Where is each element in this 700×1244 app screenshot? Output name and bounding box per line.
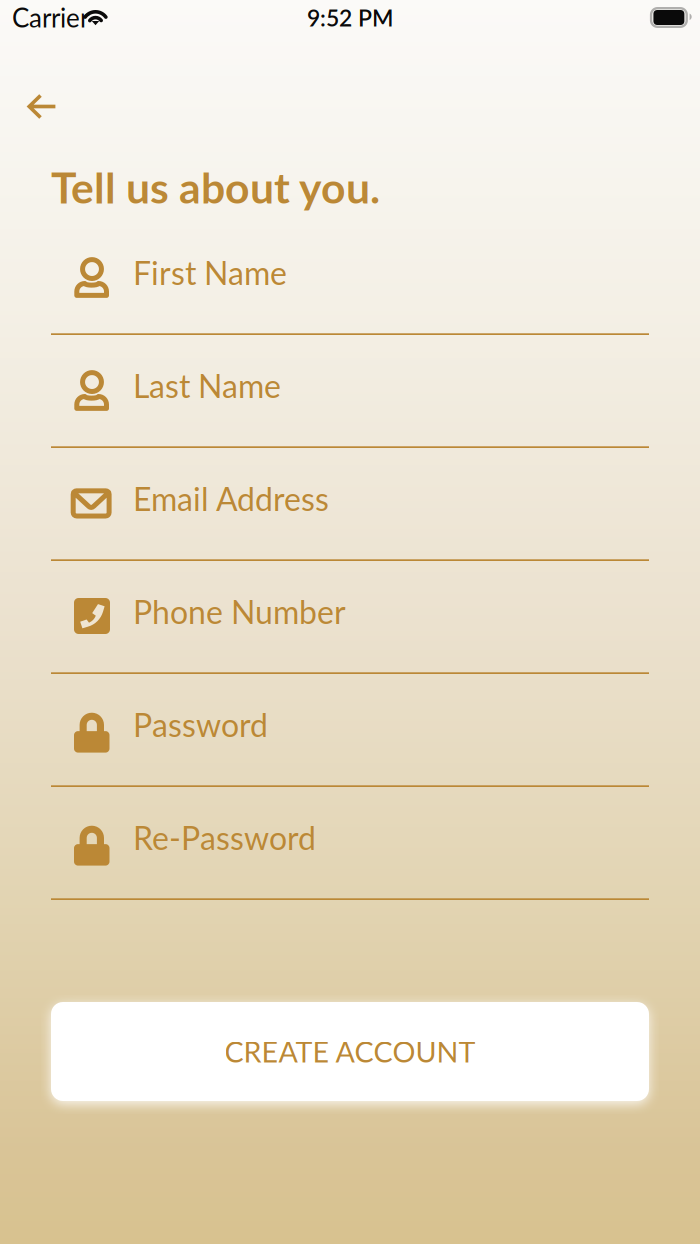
staticText: Last Name [133, 366, 281, 405]
button[interactable]: Last Name [51, 335, 649, 448]
staticText: Password [133, 705, 268, 744]
staticText: Carrier [12, 2, 89, 33]
staticText: Email Address [133, 479, 329, 518]
button[interactable]: Password [51, 674, 649, 787]
staticText: Re-Password [133, 818, 316, 857]
button[interactable]: Phone Number [51, 561, 649, 674]
button[interactable]: Re-Password [51, 787, 649, 900]
button[interactable]: First Name [51, 222, 649, 335]
staticText: CREATE ACCOUNT [224, 1034, 475, 1069]
button[interactable]: Back [13, 69, 71, 123]
staticText: Phone Number [133, 592, 346, 631]
staticText: First Name [133, 253, 287, 292]
button[interactable]: CREATE ACCOUNT [51, 1002, 649, 1101]
staticText: Tell us about you. [51, 161, 380, 213]
staticText: 9:52 PM [307, 4, 393, 31]
button[interactable]: Email Address [51, 448, 649, 561]
